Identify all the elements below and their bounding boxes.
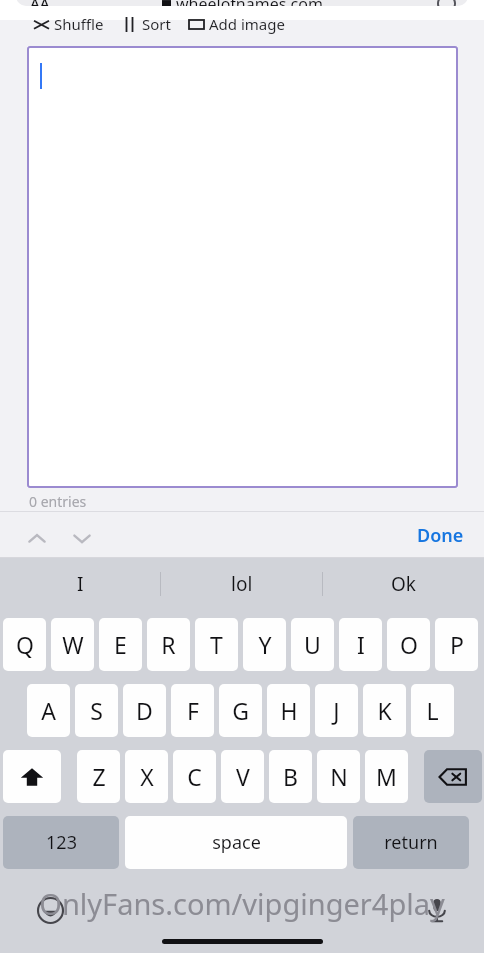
staticText: F: [187, 695, 199, 726]
button[interactable]: B: [269, 750, 312, 803]
button[interactable]: Next field: [65, 522, 99, 556]
button[interactable]: I: [0, 558, 160, 610]
staticText: OnlyFans.com/vipginger4play: [0, 884, 484, 923]
staticText: I: [77, 571, 84, 597]
staticText: T: [210, 629, 223, 660]
button[interactable]: L: [411, 684, 454, 737]
button[interactable]: lol: [161, 558, 322, 610]
staticText: I: [357, 629, 365, 660]
button[interactable]: O: [387, 618, 430, 671]
staticText: U: [304, 629, 321, 660]
button[interactable]: S: [75, 684, 118, 737]
staticText: D: [136, 695, 153, 726]
staticText: S: [90, 695, 103, 726]
button[interactable]: 123: [3, 816, 119, 869]
button[interactable]: W: [51, 618, 94, 671]
staticText: wheelofnames.com: [176, 0, 323, 6]
button[interactable]: Ok: [323, 558, 484, 610]
staticText: H: [280, 695, 298, 726]
staticText: lol: [231, 571, 253, 597]
button[interactable]: H: [267, 684, 310, 737]
button[interactable]: return: [353, 816, 469, 869]
button[interactable]: U: [291, 618, 334, 671]
staticText: E: [114, 629, 127, 660]
staticText: O: [400, 629, 418, 660]
staticText: Shuffle: [54, 14, 104, 34]
button[interactable]: G: [219, 684, 262, 737]
staticText: AA: [30, 0, 50, 6]
button[interactable]: Y: [243, 618, 286, 671]
button[interactable]: Sort: [122, 14, 171, 34]
staticText: Ok: [391, 571, 416, 597]
staticText: 0 entries: [29, 492, 87, 511]
button[interactable]: I: [339, 618, 382, 671]
button[interactable]: Shift: [3, 750, 61, 803]
button[interactable]: E: [99, 618, 142, 671]
staticText: K: [377, 695, 392, 726]
staticText: Z: [92, 761, 106, 792]
staticText: N: [330, 761, 348, 792]
staticText: Y: [258, 629, 272, 660]
button[interactable]: Add image: [189, 14, 285, 34]
button[interactable]: Z: [77, 750, 120, 803]
staticText: Q: [16, 629, 34, 660]
button[interactable]: F: [171, 684, 214, 737]
staticText: L: [426, 695, 439, 726]
button[interactable]: Emoji: [31, 891, 69, 929]
button[interactable]: Dictate: [418, 891, 456, 929]
button[interactable]: M: [365, 750, 408, 803]
button[interactable]: A: [27, 684, 70, 737]
staticText: P: [450, 629, 464, 660]
staticText: Done: [417, 523, 464, 548]
button[interactable]: C: [173, 750, 216, 803]
staticText: space: [212, 830, 261, 855]
button[interactable]: [27, 46, 458, 488]
button[interactable]: N: [317, 750, 360, 803]
staticText: Add image: [209, 14, 285, 34]
staticText: 123: [46, 830, 77, 855]
button[interactable]: K: [363, 684, 406, 737]
button[interactable]: T: [195, 618, 238, 671]
button[interactable]: Done: [417, 523, 464, 548]
staticText: V: [236, 761, 250, 792]
button[interactable]: Q: [3, 618, 46, 671]
button[interactable]: AA: [16, 0, 468, 6]
button[interactable]: D: [123, 684, 166, 737]
button[interactable]: P: [435, 618, 478, 671]
staticText: B: [283, 761, 298, 792]
button[interactable]: R: [147, 618, 190, 671]
button[interactable]: Previous field: [20, 522, 54, 556]
button[interactable]: Shuffle: [34, 14, 104, 34]
staticText: R: [161, 629, 176, 660]
staticText: Sort: [142, 14, 171, 34]
staticText: M: [376, 761, 397, 792]
staticText: J: [333, 695, 340, 726]
button[interactable]: V: [221, 750, 264, 803]
staticText: A: [41, 695, 56, 726]
staticText: W: [62, 629, 84, 660]
staticText: X: [140, 761, 154, 792]
staticText: C: [187, 761, 202, 792]
button[interactable]: space: [125, 816, 347, 869]
staticText: return: [384, 830, 438, 855]
button[interactable]: J: [315, 684, 358, 737]
button[interactable]: X: [125, 750, 168, 803]
button[interactable]: Backspace: [424, 750, 482, 803]
staticText: G: [232, 695, 249, 726]
